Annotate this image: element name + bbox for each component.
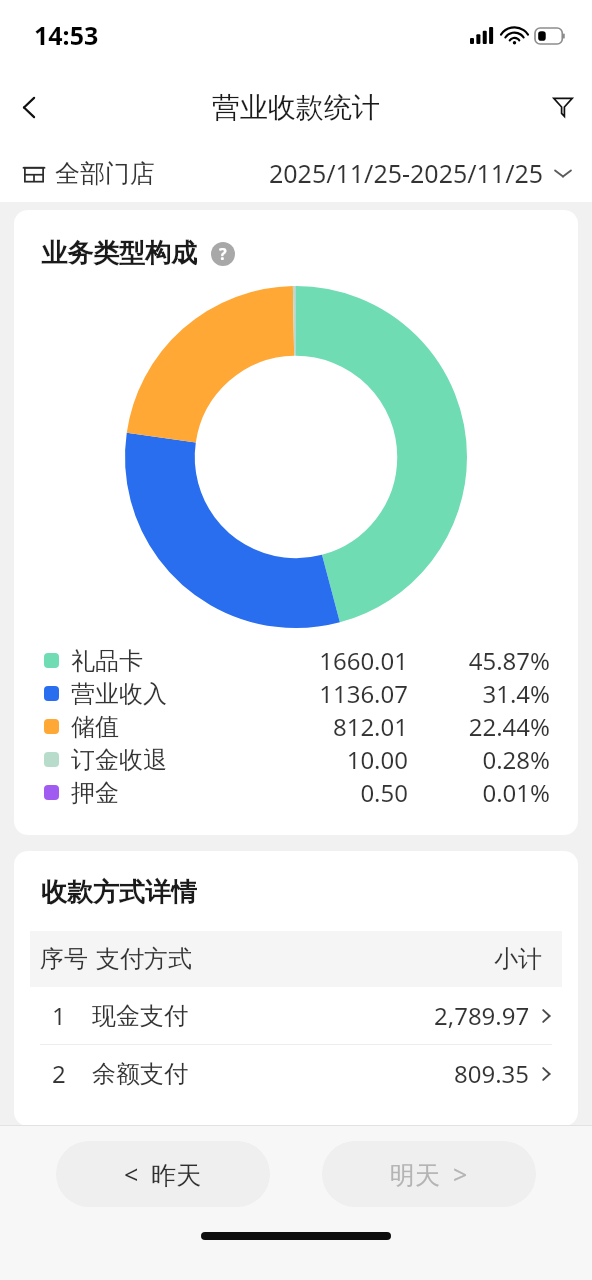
staticText: 22.44%	[408, 710, 550, 743]
button[interactable]: 明天 >	[322, 1141, 536, 1207]
staticText: 储值	[71, 712, 256, 742]
staticText: 2	[52, 1057, 66, 1090]
staticText: 现金支付	[92, 1001, 434, 1031]
staticText: 1660.01	[256, 644, 408, 677]
staticText: 营业收款统计	[212, 90, 380, 125]
button[interactable]: 1	[14, 987, 578, 1045]
staticText: 14:53	[34, 18, 99, 52]
button[interactable]: 2025/11/25-2025/11/25	[269, 156, 572, 190]
button[interactable]: 押金	[44, 776, 550, 809]
staticText: 收款方式详情	[41, 876, 197, 909]
staticText: 0.01%	[408, 776, 550, 809]
staticText: 全部门店	[55, 158, 155, 189]
button[interactable]: 礼品卡	[44, 644, 550, 677]
staticText: 809.35	[454, 1057, 530, 1090]
staticText: 序号	[40, 944, 88, 974]
button[interactable]: Help	[211, 242, 235, 266]
button[interactable]: 订金收退	[44, 743, 550, 776]
button[interactable]: Filter	[534, 78, 592, 136]
staticText: 营业收入	[71, 679, 256, 709]
staticText: 1136.07	[256, 677, 408, 710]
button[interactable]: 营业收入	[44, 677, 550, 710]
staticText: 2,789.97	[434, 999, 530, 1032]
staticText: 0.28%	[408, 743, 550, 776]
button[interactable]: 储值	[44, 710, 550, 743]
button[interactable]: < 昨天	[56, 1141, 270, 1207]
staticText: 余额支付	[92, 1059, 454, 1089]
staticText: 45.87%	[408, 644, 550, 677]
staticText: 1	[52, 999, 66, 1032]
staticText: 业务类型构成	[41, 237, 197, 270]
staticText: 小计	[494, 944, 542, 974]
staticText: < 昨天	[124, 1157, 202, 1191]
staticText: 10.00	[256, 743, 408, 776]
staticText: 0.50	[256, 776, 408, 809]
staticText: 押金	[71, 778, 256, 808]
staticText: 812.01	[256, 710, 408, 743]
staticText: 31.4%	[408, 677, 550, 710]
staticText: ?	[219, 243, 227, 265]
button[interactable]: 全部门店	[22, 158, 155, 189]
button[interactable]: 2	[14, 1045, 578, 1102]
staticText: 礼品卡	[71, 646, 256, 676]
button[interactable]: Back	[0, 78, 58, 136]
staticText: 支付方式	[96, 944, 494, 974]
staticText: 订金收退	[71, 745, 256, 775]
staticText: 明天 >	[390, 1157, 468, 1191]
staticText: 2025/11/25-2025/11/25	[269, 156, 544, 190]
